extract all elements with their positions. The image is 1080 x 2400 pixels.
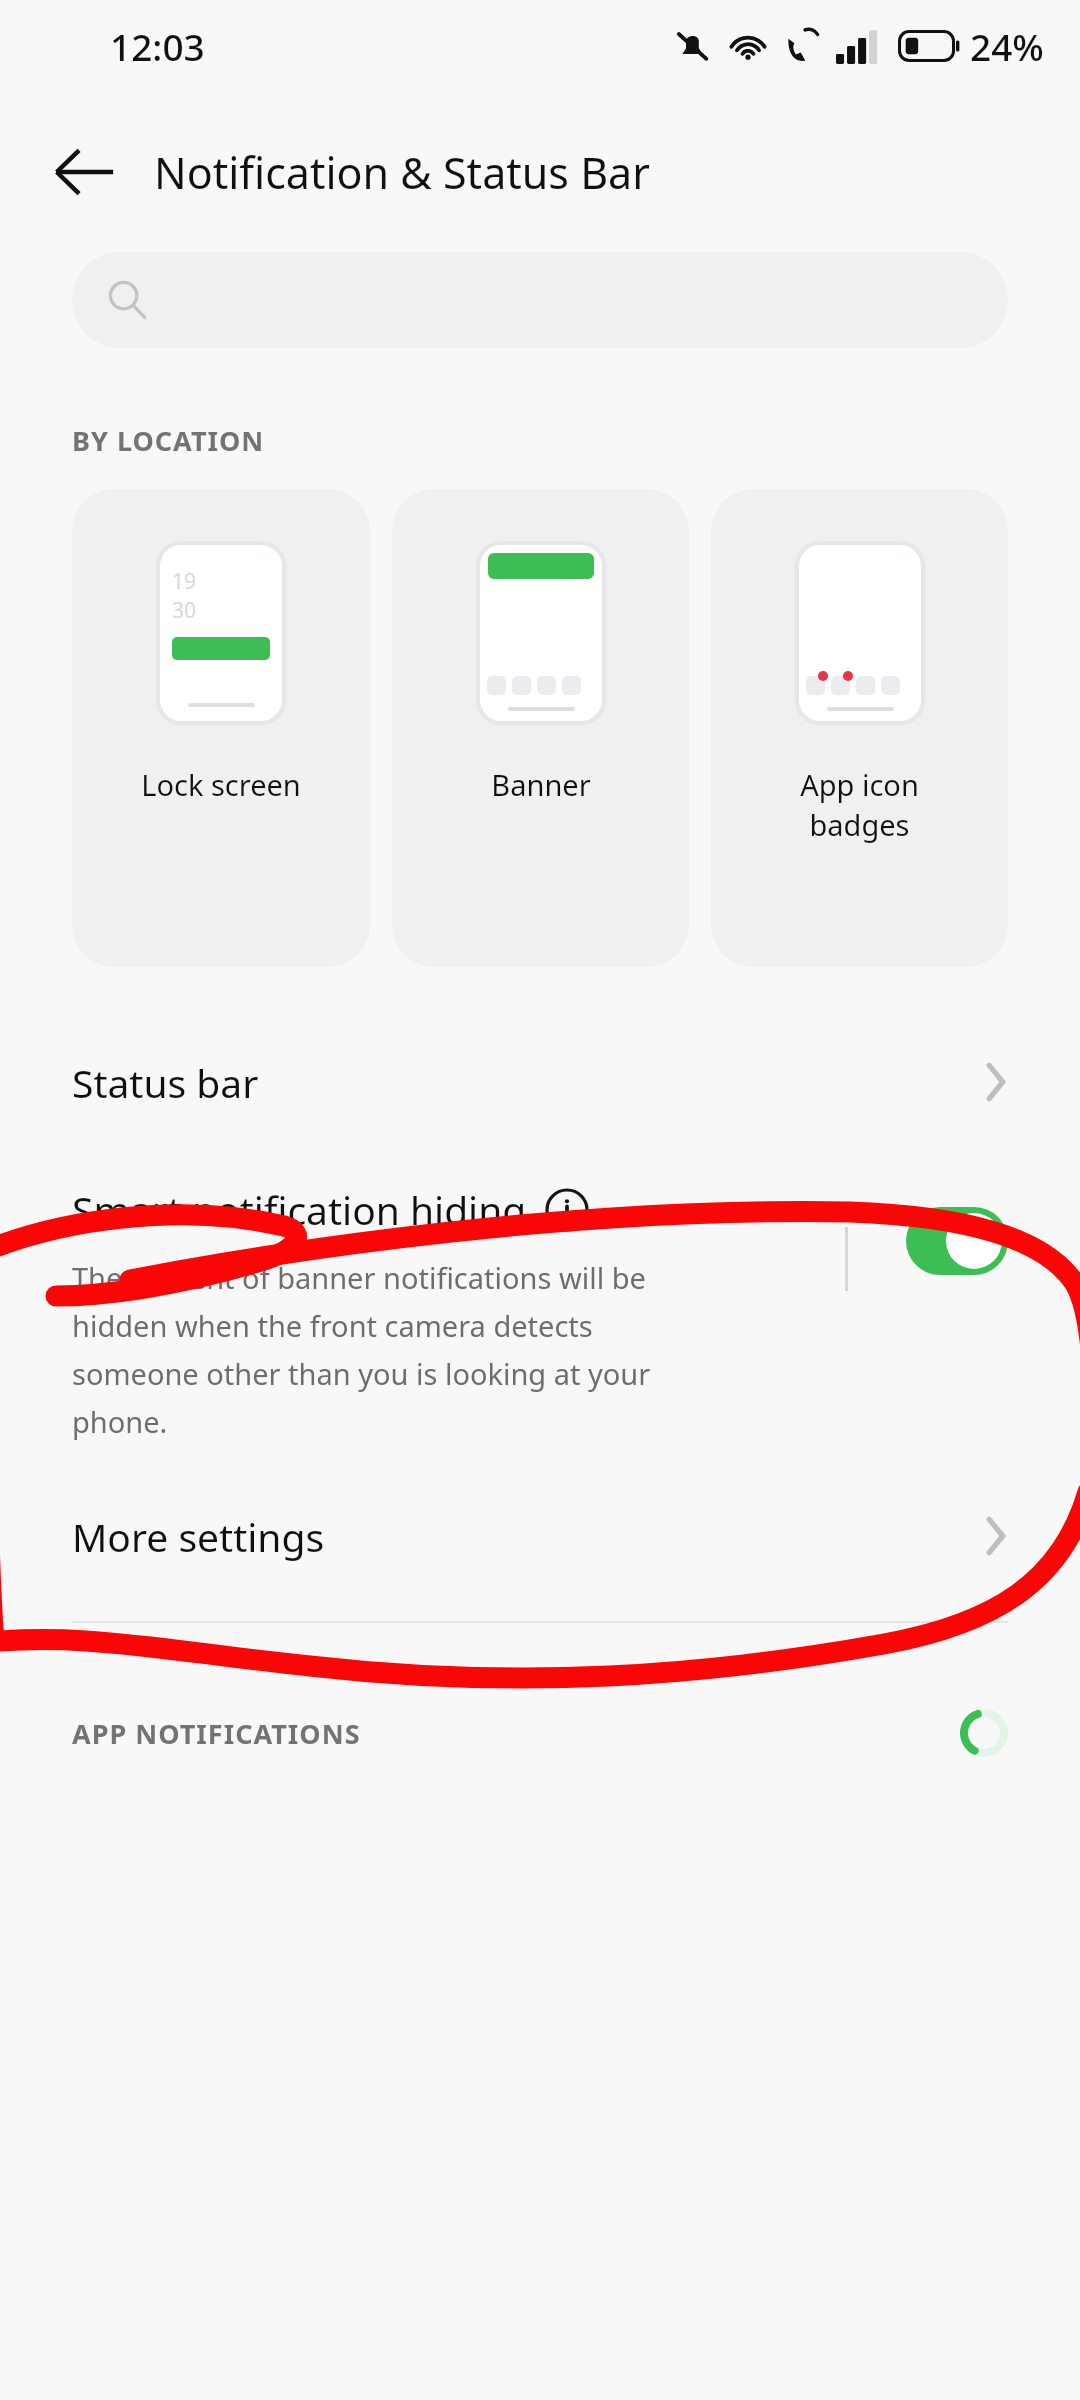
staticText: Smart notification hiding xyxy=(72,1183,527,1236)
button[interactable]: Status bar xyxy=(0,1047,1080,1117)
button[interactable]: More settings xyxy=(0,1501,1080,1571)
button[interactable]: Back xyxy=(32,120,136,224)
button[interactable]: App icon badges xyxy=(711,489,1008,967)
button[interactable]: Banner xyxy=(392,489,689,967)
staticText: APP NOTIFICATIONS xyxy=(72,1715,361,1752)
button[interactable]: Info xyxy=(544,1187,590,1233)
staticText: Notification & Status Bar xyxy=(154,143,650,202)
staticText: App icon badges xyxy=(800,765,919,845)
staticText: 19 xyxy=(172,567,197,596)
button[interactable]: Smart notification hiding xyxy=(0,1183,1080,1441)
staticText: 12:03 xyxy=(110,21,205,71)
staticText: More settings xyxy=(72,1510,325,1563)
staticText: The content of banner notifications will… xyxy=(72,1258,712,1441)
staticText: 30 xyxy=(172,596,197,625)
button[interactable]: Toggle xyxy=(906,1207,1008,1275)
staticText: Banner xyxy=(491,765,591,804)
staticText: 24% xyxy=(970,21,1044,71)
staticText: Lock screen xyxy=(141,765,301,804)
button[interactable]: 19 xyxy=(72,489,370,967)
staticText: BY LOCATION xyxy=(72,422,265,459)
staticText: Status bar xyxy=(72,1056,259,1109)
